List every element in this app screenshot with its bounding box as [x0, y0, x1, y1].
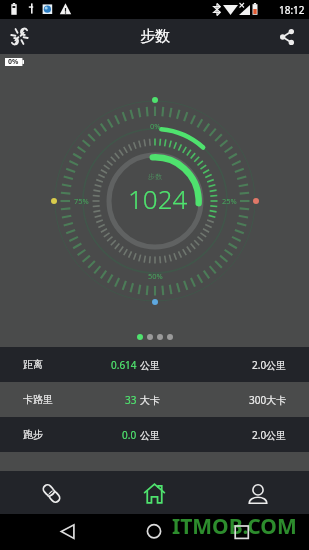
staticText: 0% [8, 57, 19, 67]
button[interactable]: Profile [206, 471, 309, 514]
button[interactable]: Home [103, 471, 206, 514]
button[interactable]: Disconnected [0, 19, 39, 54]
button[interactable]: 卡路里 [0, 382, 309, 417]
staticText: 跑步 [23, 428, 43, 441]
staticText: 33 [125, 393, 137, 407]
button[interactable]: 距离 [0, 347, 309, 382]
staticText: 300大卡 [249, 393, 287, 407]
staticText: 0% [150, 121, 161, 131]
staticText: 距离 [23, 358, 43, 371]
staticText: 50% [148, 271, 163, 281]
staticText: 步数 [148, 172, 162, 181]
staticText: 卡路里 [23, 393, 53, 406]
staticText: 18:12 [279, 3, 305, 17]
staticText: 1024 [128, 181, 188, 216]
staticText: 75% [74, 196, 89, 206]
staticText: 大卡 [140, 394, 160, 407]
staticText: 0.0 [122, 428, 137, 442]
staticText: 公里 [140, 359, 160, 372]
button[interactable]: 跑步 [0, 417, 309, 452]
staticText: 2.0公里 [252, 358, 287, 372]
staticText: 0.614 [111, 358, 137, 372]
button[interactable]: Devices [0, 471, 103, 514]
button[interactable]: Share [265, 19, 309, 54]
staticText: 2.0公里 [252, 428, 287, 442]
staticText: 公里 [140, 429, 160, 442]
staticText: 步数 [140, 27, 170, 46]
staticText: 25% [222, 196, 237, 206]
staticText: ITMOB.COM [172, 512, 297, 541]
